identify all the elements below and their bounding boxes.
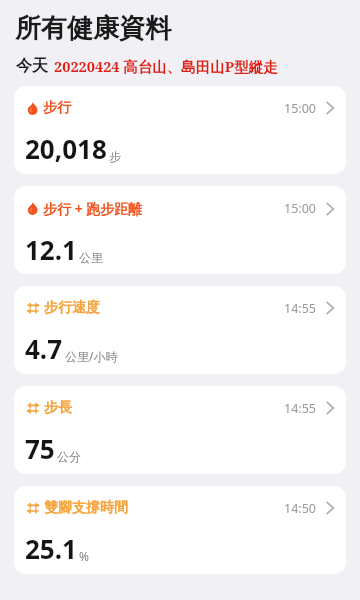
button[interactable]: 步行 + 跑步距離: [14, 186, 346, 274]
staticText: 14:50: [284, 500, 316, 517]
staticText: 15:00: [284, 200, 316, 217]
staticText: 14:55: [284, 300, 316, 317]
staticText: 公分: [57, 449, 81, 464]
staticText: 步長: [44, 399, 72, 417]
staticText: 20,018: [25, 131, 107, 166]
staticText: 12.1: [25, 232, 77, 267]
staticText: 步行: [43, 99, 71, 117]
staticText: 步行速度: [44, 299, 100, 317]
staticText: 20220424 高台山、島田山P型縱走: [54, 56, 278, 76]
staticText: 14:55: [284, 400, 316, 417]
button[interactable]: 步長: [14, 386, 346, 474]
button[interactable]: 步行速度: [14, 286, 346, 374]
staticText: 公里: [79, 250, 103, 265]
staticText: 步: [109, 149, 121, 164]
button[interactable]: 雙腳支撐時間: [14, 486, 346, 574]
button[interactable]: 步行: [14, 86, 346, 174]
staticText: 75: [25, 431, 55, 466]
staticText: %: [79, 548, 89, 564]
staticText: 雙腳支撐時間: [44, 499, 128, 517]
staticText: 25.1: [25, 531, 77, 566]
staticText: 所有健康資料: [15, 12, 171, 45]
staticText: 步行 + 跑步距離: [43, 199, 143, 218]
staticText: 15:00: [284, 100, 316, 117]
staticText: 今天: [16, 56, 48, 76]
staticText: 公里/小時: [65, 348, 118, 364]
staticText: 4.7: [25, 331, 63, 366]
